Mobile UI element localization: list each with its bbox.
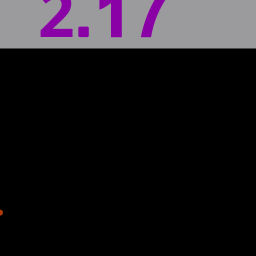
button[interactable]: Series marker: [0, 210, 3, 216]
button[interactable]: 2.17: [0, 0, 256, 256]
staticText: 2: [38, 0, 75, 55]
